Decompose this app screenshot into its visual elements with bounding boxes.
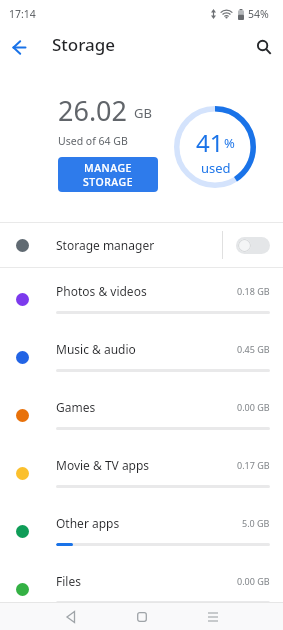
button[interactable] (239, 24, 283, 64)
staticText: GB (134, 104, 152, 122)
button[interactable]: Storage manager (0, 223, 283, 267)
staticText: Movie & TV apps (56, 457, 150, 473)
staticText: 0.45 GB (237, 343, 270, 355)
staticText: 0.00 GB (237, 575, 270, 587)
staticText: Used of 64 GB (58, 134, 128, 148)
button[interactable]: Files (0, 558, 283, 616)
staticText: Storage (52, 33, 116, 56)
staticText: Storage manager (56, 237, 155, 253)
button[interactable]: Music & audio (0, 326, 283, 384)
staticText: 17:14 (9, 7, 36, 21)
staticText: Other apps (56, 515, 120, 531)
staticText: 41 (196, 126, 224, 159)
button[interactable]: Games (0, 384, 283, 442)
staticText: 0.17 GB (237, 459, 270, 471)
button[interactable] (177, 603, 248, 630)
staticText: MANAGE STORAGE (83, 161, 133, 189)
staticText: 54% (248, 7, 269, 21)
staticText: % (224, 134, 235, 152)
button[interactable] (35, 603, 106, 630)
staticText: Photos & videos (56, 283, 147, 299)
button[interactable] (236, 237, 270, 254)
staticText: Games (56, 399, 96, 415)
button[interactable]: Movie & TV apps (0, 442, 283, 500)
button[interactable]: MANAGE STORAGE (58, 157, 158, 192)
staticText: 26.02 (58, 92, 128, 129)
staticText: Files (56, 573, 81, 589)
staticText: 0.00 GB (237, 401, 270, 413)
staticText: 5.0 GB (242, 517, 270, 529)
button[interactable]: Other apps (0, 500, 283, 558)
staticText: Music & audio (56, 341, 136, 357)
button[interactable]: Photos & videos (0, 268, 283, 326)
button[interactable] (0, 24, 44, 64)
staticText: used (201, 159, 231, 177)
staticText: 0.18 GB (237, 285, 270, 297)
button[interactable] (106, 603, 177, 630)
